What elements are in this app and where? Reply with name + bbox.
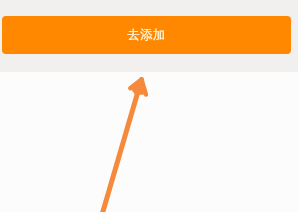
button[interactable]: 去添加 xyxy=(2,16,291,54)
staticText: 去添加 xyxy=(127,27,166,43)
other: Arrow pointing to the add button xyxy=(0,72,298,212)
